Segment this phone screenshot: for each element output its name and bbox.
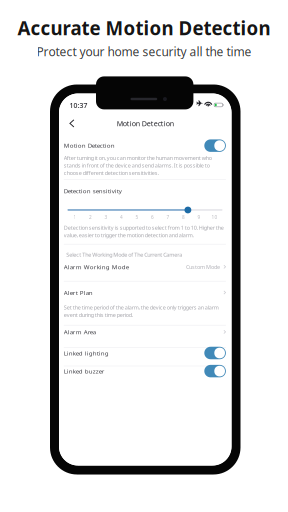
staticText: Alert Plan [64,288,93,297]
staticText: Motion Detection [117,119,174,128]
staticText: Alarm Working Mode [64,263,129,271]
staticText: 2 [89,214,92,220]
staticText: Set the time period of the alarm, the de… [64,304,219,318]
button[interactable]: Back [66,116,78,131]
staticText: Select The Working Mode of The Current C… [66,251,182,258]
staticText: 7 [166,214,169,220]
staticText: Motion Detection [64,141,115,150]
staticText: 3 [104,214,107,220]
staticText: Alarm Area [64,328,96,336]
staticText: Detection sensitivity [64,187,122,195]
staticText: Linked buzzer [64,367,105,375]
staticText: Accurate Motion Detection [17,15,270,41]
staticText: 10:37 [69,101,87,110]
staticText: 1 [73,214,76,220]
staticText: Custom Mode [186,263,220,270]
staticText: 9 [197,214,200,220]
staticText: 4 [120,214,123,220]
button[interactable]: Linked buzzer [204,365,226,377]
staticText: Protect your home security all the time [36,43,251,60]
staticText: 8 [182,214,185,220]
staticText: 5 [135,214,138,220]
staticText: Linked lighting [64,349,109,357]
button[interactable]: Motion Detection [204,139,226,152]
staticText: 6 [151,214,154,220]
button[interactable]: Alarm Area [64,325,226,338]
staticText: After turning it on, you can monitor the… [64,154,212,176]
staticText: 10 [211,214,217,220]
button[interactable]: Linked lighting [204,347,226,359]
staticText: Detection sensitivity is supported to se… [64,224,224,239]
button[interactable]: Alarm Working Mode [64,260,226,273]
button[interactable]: Alert Plan [64,286,226,299]
